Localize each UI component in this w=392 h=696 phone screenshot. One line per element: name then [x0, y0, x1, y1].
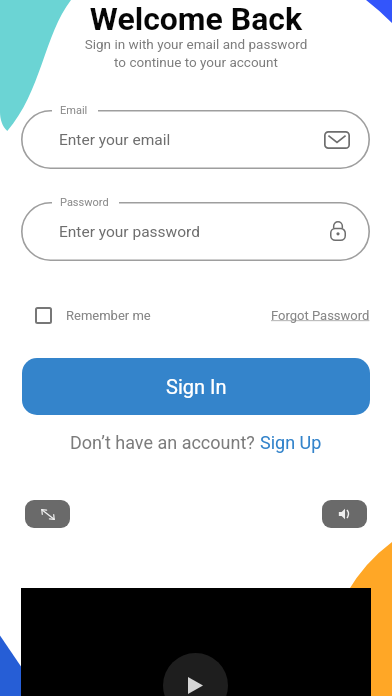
staticText: Remember me — [66, 308, 151, 323]
staticText: Email — [60, 104, 88, 117]
button[interactable]: Sign In — [22, 358, 370, 415]
button[interactable]: Sign Up — [260, 432, 322, 453]
staticText: Sign In — [166, 375, 227, 398]
button[interactable]: Volume — [322, 500, 367, 528]
button[interactable]: Forgot Password — [271, 308, 370, 323]
staticText: Enter your email — [59, 131, 171, 149]
staticText: Don’t have an account? — [70, 432, 260, 453]
button[interactable]: Enter your email — [21, 110, 370, 169]
staticText: Sign in with your email and password to … — [0, 36, 392, 70]
button[interactable]: Play video — [21, 588, 371, 696]
staticText: Enter your password — [59, 223, 200, 241]
button[interactable]: Enter your password — [21, 202, 370, 261]
button[interactable]: Remember me — [35, 307, 151, 324]
button[interactable]: Fullscreen — [25, 500, 70, 528]
staticText: Welcome Back — [0, 0, 392, 38]
staticText: Password — [60, 196, 109, 209]
